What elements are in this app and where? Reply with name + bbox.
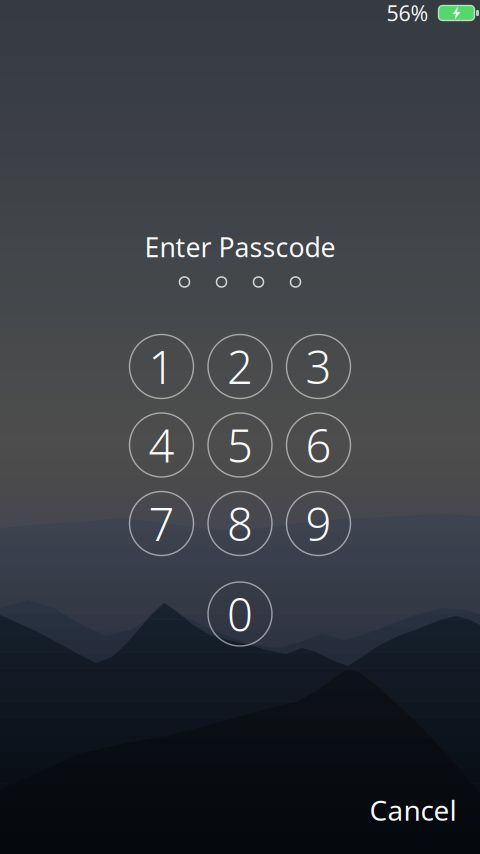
button[interactable]: 2 [208, 334, 272, 398]
staticText: Cancel [369, 791, 456, 829]
button[interactable]: 0 [208, 582, 272, 646]
button[interactable]: 4 [129, 413, 193, 477]
staticText: 1 [148, 336, 174, 397]
staticText: 0 [227, 584, 253, 644]
button[interactable]: 8 [208, 491, 272, 555]
button[interactable]: 3 [286, 334, 350, 398]
button[interactable]: 5 [208, 413, 272, 477]
button[interactable]: 9 [286, 491, 350, 555]
button[interactable]: 1 [129, 334, 193, 398]
button[interactable]: Cancel [355, 781, 470, 839]
staticText: 3 [305, 336, 331, 397]
staticText: 56% [386, 0, 428, 27]
button[interactable]: 7 [129, 491, 193, 555]
staticText: 2 [227, 336, 253, 397]
staticText: 9 [305, 493, 331, 554]
button[interactable]: 6 [286, 413, 350, 477]
staticText: 5 [227, 415, 253, 475]
staticText: 4 [148, 415, 174, 475]
staticText: Enter Passcode [144, 229, 335, 265]
staticText: 8 [227, 493, 253, 554]
staticText: 6 [305, 415, 331, 475]
staticText: 7 [148, 493, 174, 554]
